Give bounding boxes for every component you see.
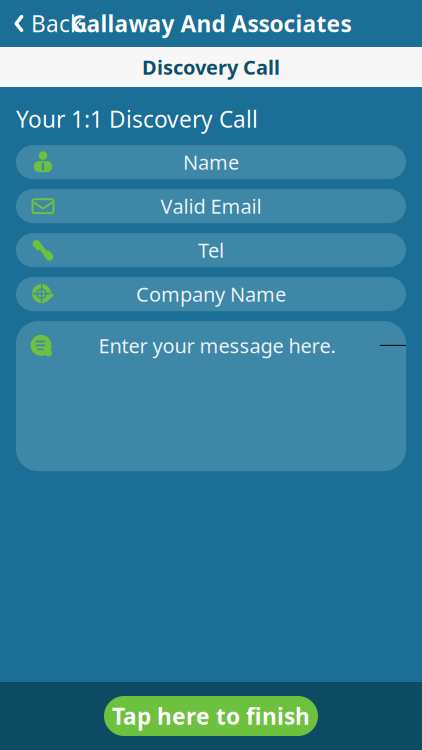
staticText: Company Name	[136, 281, 286, 307]
button[interactable]: Tap here to finish	[104, 696, 318, 736]
staticText: Tel	[198, 237, 224, 263]
staticText: Valid Email	[160, 193, 261, 219]
staticText: Tap here to finish	[112, 701, 310, 731]
button[interactable]: Enter your message here.	[16, 321, 406, 471]
staticText: Your 1:1 Discovery Call	[16, 104, 258, 134]
button[interactable]: Tel	[16, 233, 406, 267]
staticText: Gallaway And Associates	[70, 8, 351, 38]
button[interactable]: Company Name	[16, 277, 406, 311]
staticText: Enter your message here.	[98, 332, 335, 359]
button[interactable]: Valid Email	[16, 189, 406, 223]
staticText: Name	[183, 149, 239, 175]
staticText: Back...	[31, 8, 100, 38]
staticText: Discovery Call	[142, 54, 280, 80]
button[interactable]: Back...	[0, 1, 112, 45]
button[interactable]: Name	[16, 145, 406, 179]
